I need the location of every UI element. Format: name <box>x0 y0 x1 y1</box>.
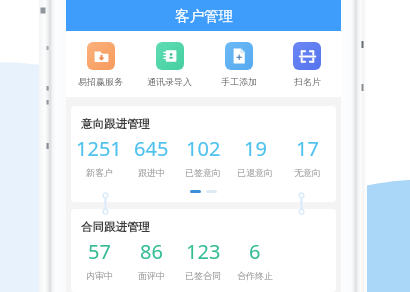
staticText: 意向跟进管理 <box>81 117 150 131</box>
staticText: 内审中 <box>86 270 113 281</box>
staticText: 1251 <box>76 135 122 162</box>
button[interactable]: 通讯录导入 <box>135 42 204 87</box>
button[interactable]: 扫名片 <box>273 42 341 87</box>
staticText: 已退意向 <box>237 167 273 178</box>
staticText: 17 <box>296 135 319 162</box>
staticText: 合作终止 <box>237 270 273 281</box>
staticText: 易招赢服务 <box>78 76 123 87</box>
staticText: 通讯录导入 <box>147 76 192 87</box>
staticText: 57 <box>88 238 111 265</box>
button[interactable]: 意向跟进管理 <box>71 106 336 202</box>
staticText: 645 <box>134 135 169 162</box>
button[interactable]: 手工添加 <box>204 42 273 87</box>
staticText: 客户管理 <box>175 7 233 25</box>
button[interactable]: 合同跟进管理 <box>71 209 336 292</box>
staticText: 86 <box>140 238 163 265</box>
staticText: 无意向 <box>294 167 321 178</box>
staticText: 跟进中 <box>138 167 165 178</box>
staticText: 新客户 <box>86 167 113 178</box>
staticText: 已签合同 <box>185 270 221 281</box>
staticText: 手工添加 <box>221 76 257 87</box>
staticText: 面评中 <box>138 270 165 281</box>
staticText: 扫名片 <box>294 76 321 87</box>
staticText: 合同跟进管理 <box>81 220 150 234</box>
staticText: 19 <box>244 135 267 162</box>
staticText: 123 <box>186 238 221 265</box>
staticText: 已签意向 <box>185 167 221 178</box>
button[interactable]: 易招赢服务 <box>66 42 135 87</box>
staticText: 6 <box>249 238 261 265</box>
staticText: 102 <box>186 135 221 162</box>
